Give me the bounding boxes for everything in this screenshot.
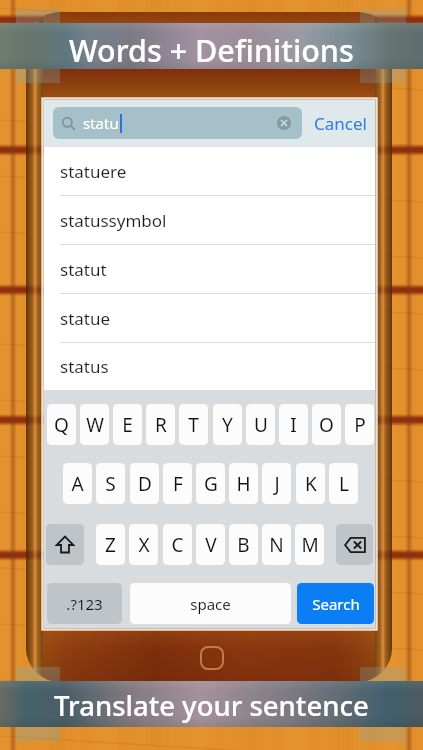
staticText: W bbox=[86, 412, 104, 438]
staticText: E bbox=[122, 412, 133, 438]
button[interactable]: statussymbol bbox=[44, 196, 375, 245]
staticText: U bbox=[254, 412, 268, 438]
button[interactable]: Search bbox=[297, 583, 374, 624]
button[interactable]: M bbox=[295, 524, 324, 565]
button[interactable]: .?123 bbox=[47, 583, 122, 624]
button[interactable]: N bbox=[262, 524, 291, 565]
staticText: C bbox=[171, 532, 184, 558]
button[interactable]: G bbox=[196, 463, 225, 504]
staticText: V bbox=[205, 532, 217, 558]
button[interactable]: J bbox=[262, 463, 291, 504]
button[interactable]: I bbox=[279, 404, 308, 445]
button[interactable]: L bbox=[329, 463, 358, 504]
staticText: statuere bbox=[60, 160, 127, 183]
button[interactable]: Y bbox=[213, 404, 242, 445]
staticText: P bbox=[354, 412, 366, 438]
staticText: status bbox=[60, 355, 109, 378]
button[interactable]: S bbox=[96, 463, 125, 504]
staticText: Q bbox=[54, 412, 69, 438]
staticText: H bbox=[236, 471, 251, 497]
button[interactable]: H bbox=[229, 463, 258, 504]
staticText: statussymbol bbox=[60, 209, 167, 232]
button[interactable]: C bbox=[163, 524, 192, 565]
staticText: Y bbox=[222, 412, 233, 438]
button[interactable]: Z bbox=[96, 524, 125, 565]
button[interactable]: X bbox=[129, 524, 158, 565]
staticText: space bbox=[190, 594, 231, 614]
staticText: B bbox=[237, 532, 250, 558]
button[interactable]: E bbox=[113, 404, 142, 445]
button[interactable]: W bbox=[80, 404, 109, 445]
staticText: O bbox=[319, 412, 334, 438]
staticText: A bbox=[71, 471, 84, 497]
staticText: S bbox=[105, 471, 116, 497]
button[interactable]: D bbox=[130, 463, 159, 504]
button[interactable]: statuere bbox=[44, 147, 375, 196]
button[interactable]: A bbox=[63, 463, 92, 504]
button[interactable]: K bbox=[296, 463, 325, 504]
staticText: Translate your sentence bbox=[54, 687, 369, 724]
button[interactable]: Q bbox=[47, 404, 76, 445]
staticText: K bbox=[305, 471, 317, 497]
button[interactable]: P bbox=[345, 404, 374, 445]
button[interactable]: statut bbox=[44, 245, 375, 294]
button[interactable]: U bbox=[246, 404, 275, 445]
staticText: D bbox=[138, 471, 152, 497]
staticText: Cancel bbox=[314, 112, 367, 135]
staticText: G bbox=[204, 471, 218, 497]
staticText: N bbox=[269, 532, 284, 558]
button[interactable]: Shift bbox=[46, 524, 84, 565]
button[interactable]: statue bbox=[44, 294, 375, 343]
button[interactable]: Backspace bbox=[336, 524, 373, 565]
staticText: statut bbox=[60, 258, 107, 281]
staticText: I bbox=[290, 412, 297, 438]
button[interactable]: R bbox=[146, 404, 175, 445]
staticText: R bbox=[155, 412, 167, 438]
button[interactable]: Cancel bbox=[306, 107, 375, 139]
staticText: .?123 bbox=[66, 594, 103, 614]
button[interactable]: statu bbox=[53, 107, 302, 139]
staticText: Words + Definitions bbox=[69, 29, 354, 71]
button[interactable]: T bbox=[179, 404, 208, 445]
button[interactable]: B bbox=[229, 524, 258, 565]
button[interactable]: space bbox=[130, 583, 291, 624]
staticText: M bbox=[301, 532, 319, 558]
button[interactable]: status bbox=[44, 343, 375, 390]
staticText: statue bbox=[60, 307, 111, 330]
button[interactable]: Clear text bbox=[277, 116, 291, 130]
staticText: X bbox=[138, 532, 150, 558]
button[interactable]: V bbox=[196, 524, 225, 565]
staticText: T bbox=[188, 412, 199, 438]
button[interactable]: F bbox=[163, 463, 192, 504]
staticText: Search bbox=[312, 594, 360, 614]
staticText: Z bbox=[105, 532, 116, 558]
staticText: L bbox=[339, 471, 349, 497]
staticText: J bbox=[274, 471, 280, 497]
button[interactable]: O bbox=[312, 404, 341, 445]
staticText: statu bbox=[83, 113, 119, 133]
staticText: F bbox=[173, 471, 183, 497]
